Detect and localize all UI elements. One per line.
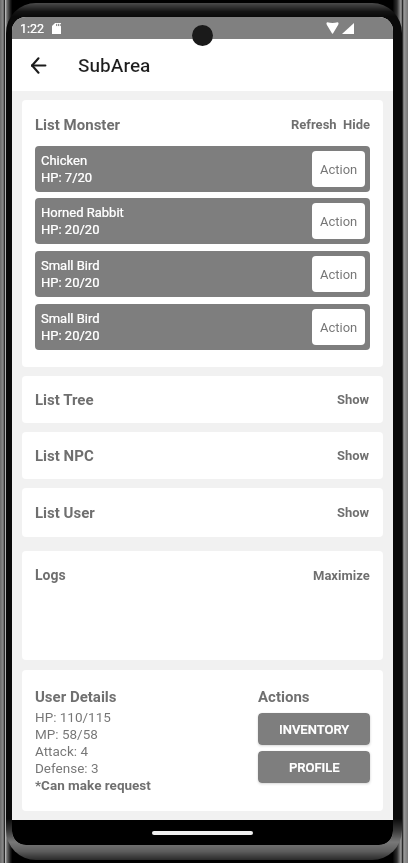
staticText: Show — [337, 505, 370, 520]
staticText: List NPC — [35, 447, 94, 465]
button[interactable]: Action — [312, 203, 365, 239]
staticText: Hide — [343, 117, 370, 132]
button[interactable]: Small Bird — [35, 251, 370, 297]
button[interactable]: Horned Rabbit — [35, 198, 370, 244]
staticText: MP: 58/58 — [35, 726, 98, 742]
button[interactable]: Maximize — [313, 568, 370, 583]
staticText: Chicken — [41, 153, 88, 168]
button[interactable]: Action — [312, 151, 365, 187]
staticText: List Tree — [35, 391, 94, 409]
button[interactable]: PROFILE — [258, 751, 370, 783]
button[interactable]: Hide — [343, 117, 370, 134]
staticText: *Can make request — [35, 777, 151, 793]
staticText: List Monster — [35, 116, 121, 134]
button[interactable]: Show — [337, 505, 370, 520]
staticText: Horned Rabbit — [41, 205, 124, 220]
staticText: Attack: 4 — [35, 743, 88, 759]
staticText: HP: 110/115 — [35, 709, 111, 725]
button[interactable]: INVENTORY — [258, 713, 370, 745]
staticText: HP: 20/20 — [41, 222, 100, 237]
button[interactable]: Show — [337, 392, 370, 407]
button[interactable]: Chicken — [35, 146, 370, 192]
staticText: Show — [337, 448, 370, 463]
button[interactable]: Action — [312, 256, 365, 292]
staticText: Logs — [35, 567, 66, 583]
staticText: INVENTORY — [279, 722, 350, 737]
staticText: Refresh — [291, 117, 337, 132]
staticText: HP: 20/20 — [41, 275, 100, 290]
staticText: Maximize — [313, 568, 370, 583]
button[interactable]: Refresh — [291, 117, 337, 134]
staticText: HP: 20/20 — [41, 328, 100, 343]
button[interactable]: Small Bird — [35, 304, 370, 350]
staticText: User Details — [35, 688, 117, 706]
button[interactable]: Show — [337, 448, 370, 463]
staticText: List User — [35, 504, 95, 522]
staticText: PROFILE — [289, 760, 340, 775]
staticText: Defense: 3 — [35, 760, 99, 776]
staticText: SubArea — [78, 54, 151, 76]
staticText: Action — [320, 214, 358, 229]
staticText: Action — [320, 267, 358, 282]
staticText: Action — [320, 162, 358, 177]
staticText: Small Bird — [41, 258, 100, 273]
staticText: 1:22 — [20, 21, 45, 36]
staticText: Show — [337, 392, 370, 407]
staticText: Small Bird — [41, 311, 100, 326]
button[interactable]: Action — [312, 309, 365, 345]
button[interactable]: Back — [12, 39, 65, 91]
staticText: Action — [320, 320, 358, 335]
staticText: HP: 7/20 — [41, 170, 93, 185]
staticText: Actions — [258, 688, 310, 706]
